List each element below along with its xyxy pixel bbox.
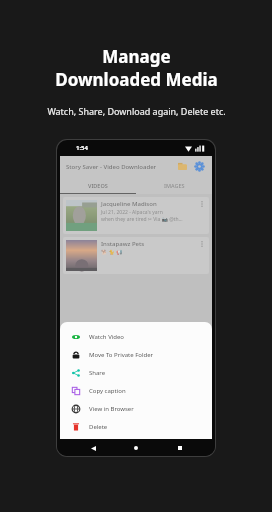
staticText: Jul 21, 2022 - Alpaca's yarn (101, 209, 163, 216)
staticText: 1:54 (76, 144, 88, 152)
button[interactable]: More options (197, 200, 206, 214)
button[interactable]: IMAGES (136, 177, 212, 193)
button[interactable]: Recent apps (172, 440, 188, 456)
button[interactable]: View in Browser (60, 400, 212, 418)
button[interactable]: Move To Private Folder (60, 346, 212, 364)
button[interactable]: Delete (60, 418, 212, 436)
staticText: when they are tired ✂ Via 📷 @th... (101, 216, 183, 223)
button[interactable]: Watch Video (60, 328, 212, 346)
staticText: Manage Downloaded Media (55, 45, 218, 91)
staticText: View in Browser (89, 405, 134, 413)
staticText: Instapawz Pets (101, 240, 145, 248)
staticText: Jacqueline Madison (101, 200, 157, 208)
staticText: Move To Private Folder (89, 351, 154, 359)
staticText: Share (89, 369, 106, 377)
button[interactable]: Instapawz Pets (63, 237, 209, 274)
staticText: VIDEOS (88, 182, 108, 189)
button[interactable]: Jacqueline Madison (63, 197, 209, 234)
button[interactable]: VIDEOS (60, 177, 136, 193)
button[interactable]: Copy caption (60, 382, 212, 400)
staticText: Copy caption (89, 387, 126, 395)
staticText: Watch Video (89, 333, 124, 341)
button[interactable]: Back (85, 440, 101, 456)
button[interactable]: Settings (193, 160, 206, 173)
button[interactable]: Home (128, 440, 144, 456)
staticText: 🐕 🐈 📢 (101, 249, 123, 256)
button[interactable]: Share (60, 364, 212, 382)
staticText: Delete (89, 423, 108, 431)
staticText: Story Saver - Video Downloader (66, 163, 157, 171)
button[interactable]: Private folder (176, 160, 189, 173)
staticText: Watch, Share, Download again, Delete etc… (47, 105, 226, 117)
staticText: IMAGES (164, 182, 185, 189)
button[interactable]: More options (197, 240, 206, 254)
